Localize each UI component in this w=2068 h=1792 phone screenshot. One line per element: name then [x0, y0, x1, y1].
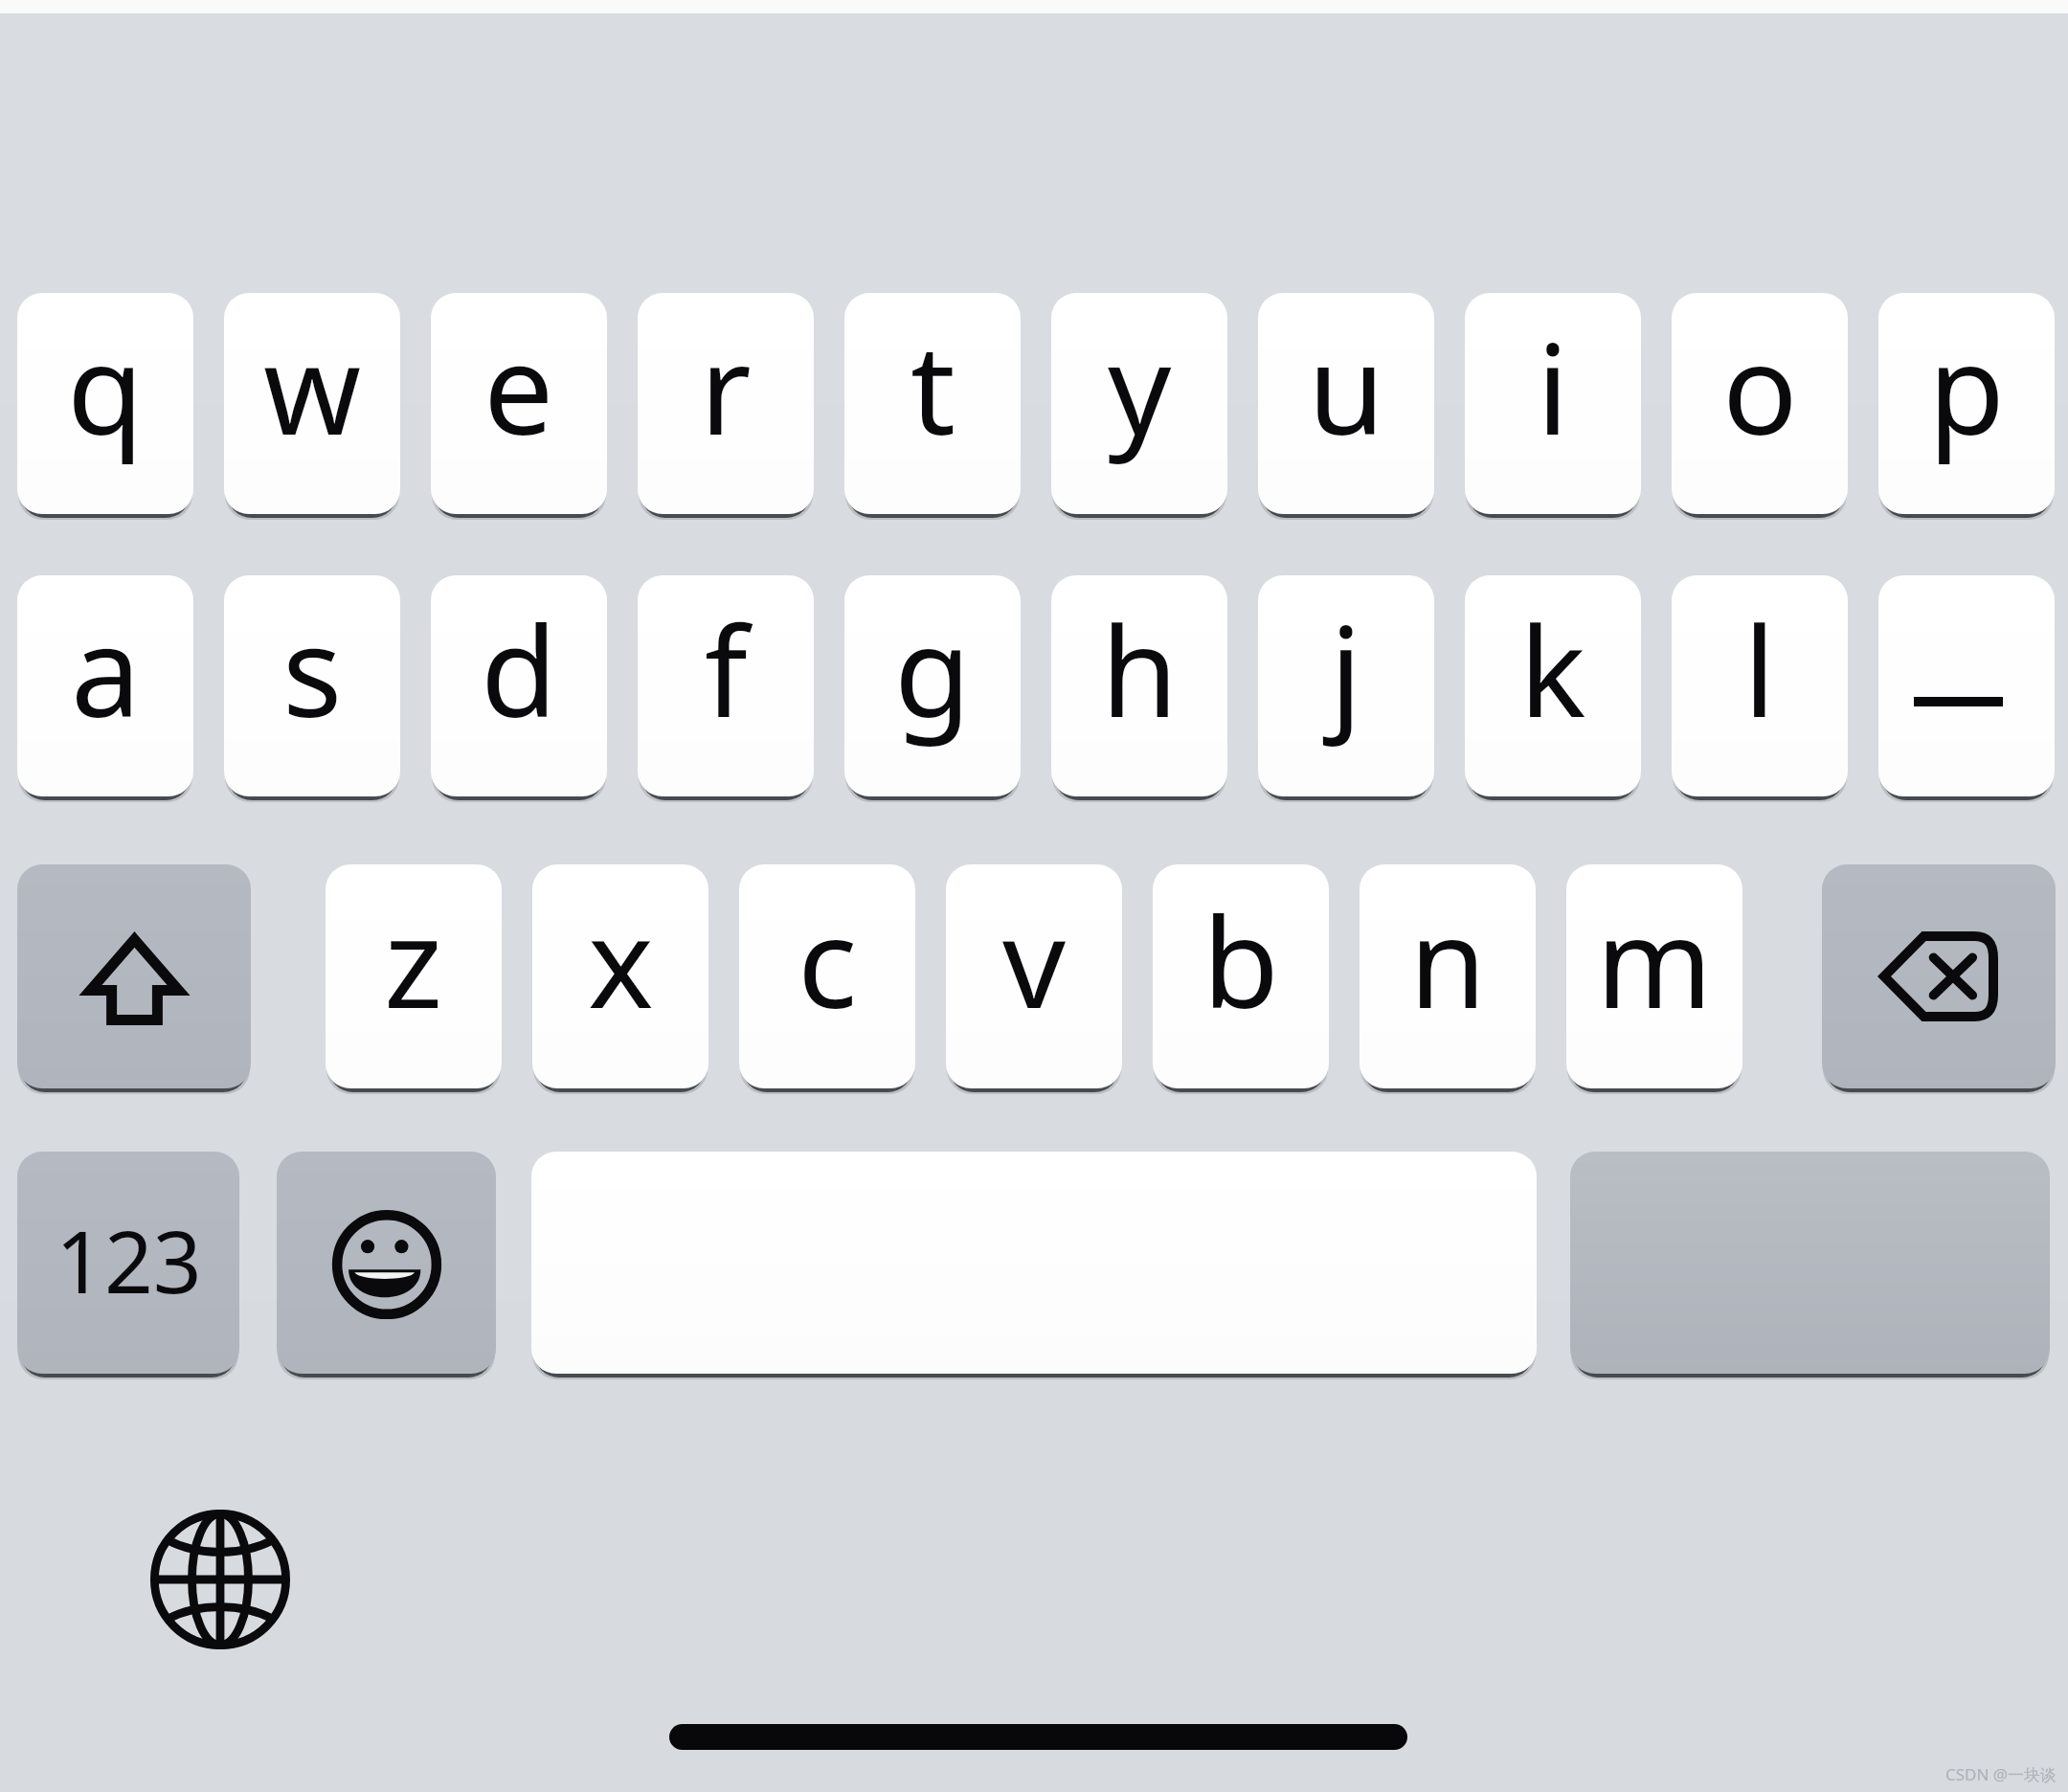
staticText: x — [588, 875, 654, 1044]
staticText: d — [481, 584, 557, 753]
staticText: k — [1519, 584, 1586, 753]
staticText: 123 — [56, 1202, 202, 1318]
button[interactable]: p — [1878, 293, 2055, 514]
staticText: s — [282, 584, 343, 753]
staticText: a — [71, 584, 141, 753]
staticText: p — [1928, 302, 2005, 471]
staticText: w — [263, 302, 362, 471]
button[interactable]: a — [17, 575, 193, 796]
button[interactable]: v — [946, 864, 1122, 1088]
button[interactable]: q — [17, 293, 193, 514]
staticText: n — [1409, 875, 1487, 1044]
staticText: CSDN @一块谈 — [1945, 1763, 2057, 1785]
button[interactable]: w — [224, 293, 400, 514]
staticText: z — [384, 875, 443, 1044]
button[interactable]: Emoji — [277, 1152, 496, 1374]
button[interactable]: d — [431, 575, 607, 796]
button[interactable]: Backspace — [1822, 864, 2056, 1088]
staticText: g — [894, 584, 971, 753]
button[interactable]: t — [844, 293, 1021, 514]
button[interactable]: b — [1153, 864, 1329, 1088]
staticText: l — [1743, 584, 1776, 753]
staticText: j — [1330, 584, 1362, 753]
button[interactable]: Shift — [17, 864, 251, 1088]
button[interactable]: u — [1258, 293, 1434, 514]
button[interactable]: n — [1360, 864, 1536, 1088]
button[interactable]: l — [1672, 575, 1848, 796]
button[interactable]: i — [1465, 293, 1641, 514]
button[interactable]: h — [1051, 575, 1227, 796]
staticText: i — [1537, 302, 1569, 471]
button[interactable]: Space — [531, 1152, 1537, 1374]
staticText: c — [798, 875, 858, 1044]
button[interactable]: m — [1566, 864, 1742, 1088]
button[interactable]: c — [739, 864, 915, 1088]
button[interactable]: g — [844, 575, 1021, 796]
staticText: e — [483, 302, 554, 471]
button[interactable]: Switch keyboard — [150, 1510, 290, 1649]
button[interactable]: Numbers — [17, 1152, 239, 1374]
staticText: v — [1002, 875, 1067, 1044]
button[interactable]: z — [326, 864, 502, 1088]
button[interactable]: y — [1051, 293, 1227, 514]
staticText: y — [1108, 302, 1172, 471]
staticText: f — [705, 584, 748, 753]
button[interactable]: s — [224, 575, 400, 796]
button[interactable]: o — [1672, 293, 1848, 514]
staticText: q — [67, 302, 144, 471]
button[interactable]: Dash — [1878, 575, 2055, 796]
staticText: o — [1722, 302, 1798, 471]
button[interactable]: r — [638, 293, 814, 514]
button[interactable]: e — [431, 293, 607, 514]
button[interactable]: Return — [1570, 1152, 2050, 1374]
staticText: r — [700, 302, 752, 471]
staticText: b — [1203, 875, 1279, 1044]
staticText: u — [1308, 302, 1385, 471]
button[interactable]: f — [638, 575, 814, 796]
staticText: t — [910, 302, 955, 471]
button[interactable]: k — [1465, 575, 1641, 796]
staticText: m — [1596, 875, 1713, 1044]
button[interactable]: j — [1258, 575, 1434, 796]
button[interactable]: x — [532, 864, 708, 1088]
staticText: h — [1101, 584, 1179, 753]
